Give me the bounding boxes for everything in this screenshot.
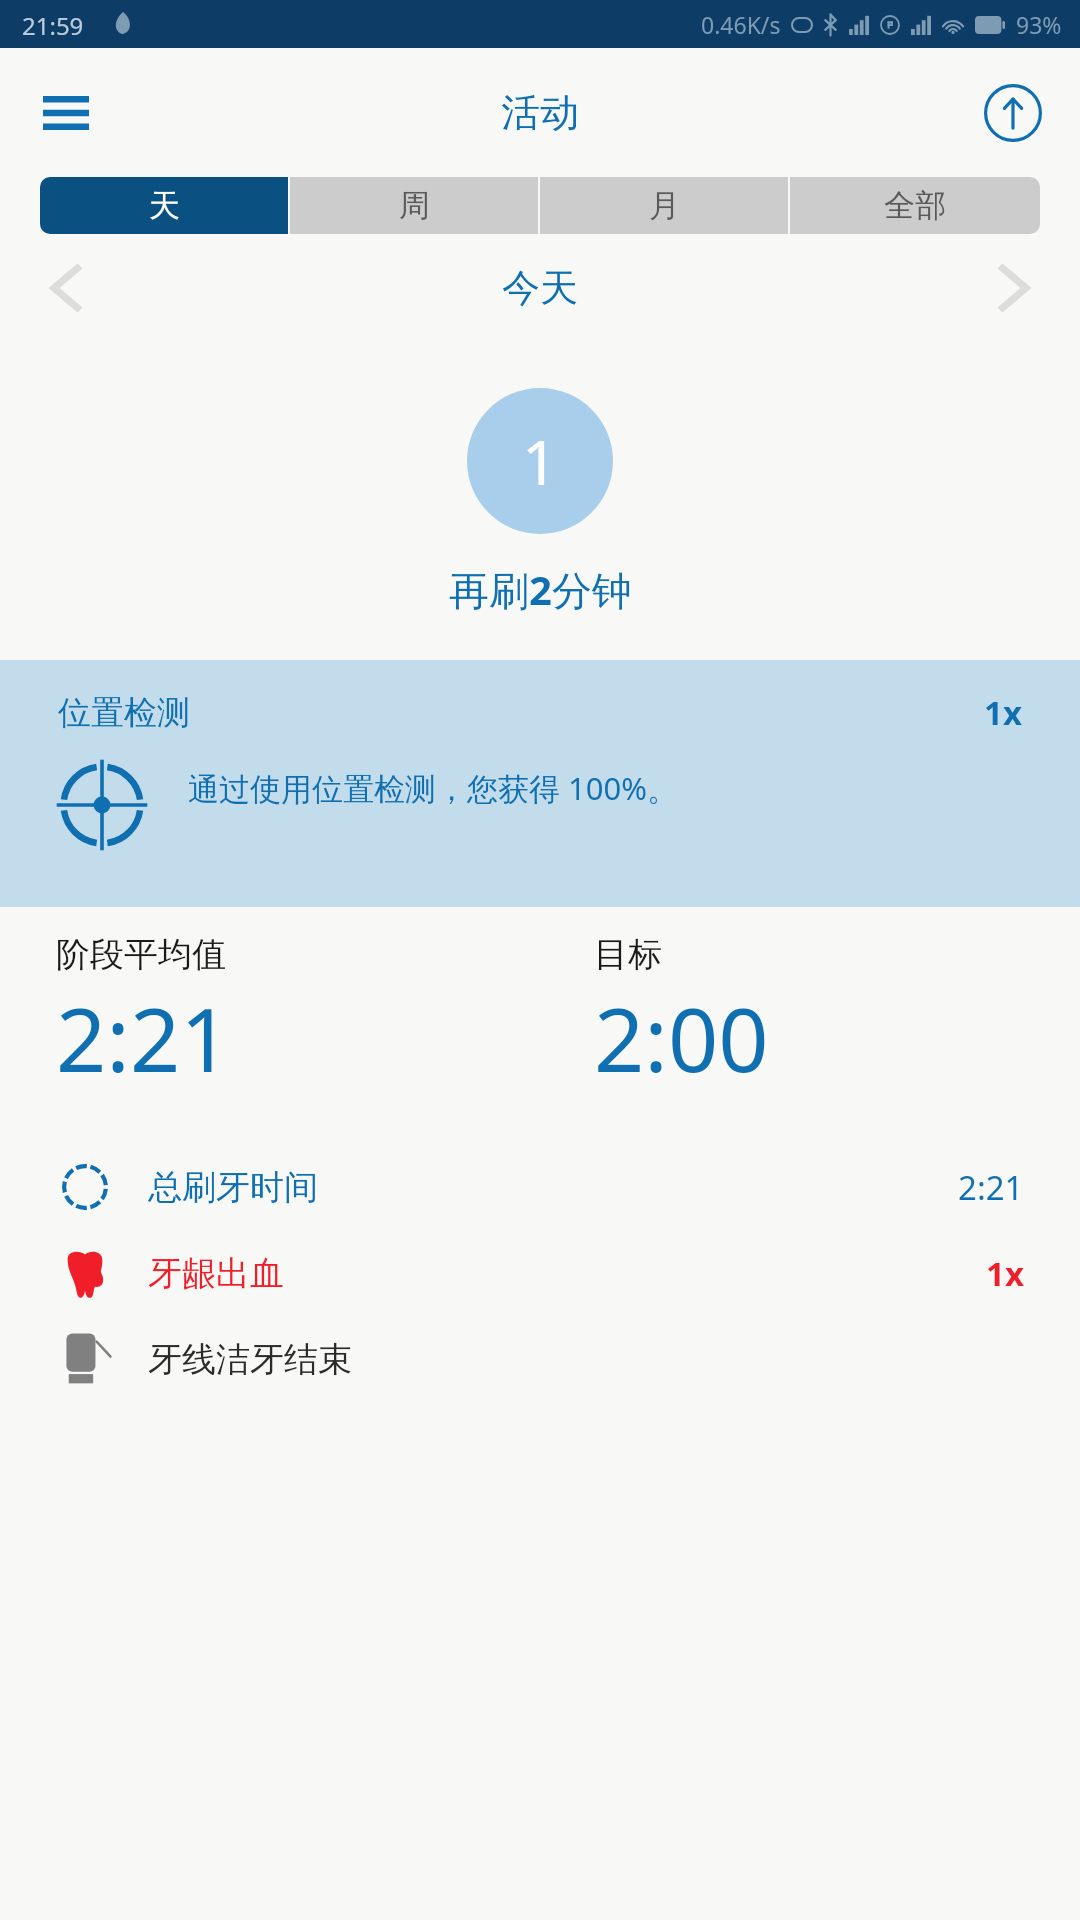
button[interactable]: Previous day xyxy=(28,249,106,327)
staticText: 21:59 xyxy=(22,9,84,42)
button[interactable]: 月 xyxy=(540,177,788,234)
staticText: 2:00 xyxy=(594,978,769,1098)
staticText: 2:21 xyxy=(56,978,231,1098)
staticText: 天 xyxy=(149,186,180,225)
button[interactable]: 总刷牙时间 xyxy=(0,1144,1080,1230)
staticText: 牙线洁牙结束 xyxy=(148,1338,352,1381)
staticText: 93% xyxy=(1016,9,1062,40)
staticText: 2 xyxy=(529,562,552,616)
staticText: 0.46K/s xyxy=(701,9,781,40)
staticText: 1 xyxy=(522,419,558,503)
staticText: 周 xyxy=(399,186,430,225)
button[interactable]: 1 xyxy=(467,388,613,534)
staticText: 目标 xyxy=(594,933,662,976)
staticText: 牙龈出血 xyxy=(148,1252,284,1295)
button[interactable]: 位置检测 xyxy=(0,660,1080,907)
staticText: 活动 xyxy=(501,88,579,137)
button[interactable]: 牙龈出血 xyxy=(0,1230,1080,1316)
staticText: 1x xyxy=(986,1251,1024,1296)
staticText: 2:21 xyxy=(958,1165,1024,1210)
staticText: 位置检测 xyxy=(58,692,190,734)
button[interactable]: 天 xyxy=(40,177,288,234)
staticText: 月 xyxy=(649,186,680,225)
button[interactable]: 周 xyxy=(290,177,538,234)
button[interactable]: 全部 xyxy=(790,177,1040,234)
staticText: 再刷 xyxy=(449,566,529,616)
staticText: 分钟 xyxy=(552,566,632,616)
button[interactable]: Sync up xyxy=(974,74,1052,152)
button[interactable]: Next day xyxy=(974,249,1052,327)
button[interactable]: 牙线洁牙结束 xyxy=(0,1316,1080,1402)
staticText: 通过使用位置检测，您获得 100%。 xyxy=(188,767,679,809)
button[interactable]: Menu xyxy=(30,77,102,149)
staticText: 全部 xyxy=(884,186,946,225)
staticText: 阶段平均值 xyxy=(56,933,226,976)
staticText: 总刷牙时间 xyxy=(148,1166,318,1209)
staticText: 1x xyxy=(984,690,1022,735)
staticText: 今天 xyxy=(502,264,578,312)
